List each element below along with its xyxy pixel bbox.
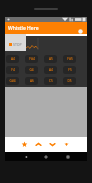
- button[interactable]: STOP: [5, 34, 26, 51]
- button[interactable]: F#5: [63, 55, 76, 63]
- button[interactable]: F#4: [25, 55, 38, 63]
- staticText: G4: [29, 68, 34, 72]
- staticText: F5: [68, 68, 72, 72]
- button[interactable]: A4: [44, 66, 57, 74]
- button[interactable]: Record: [76, 27, 85, 36]
- button[interactable]: Recents: [63, 152, 72, 161]
- button[interactable]: Tune: [60, 138, 73, 151]
- staticText: F#5: [67, 57, 73, 61]
- staticText: Whistle Here: [8, 25, 39, 32]
- staticText: G#4: [9, 79, 16, 83]
- button[interactable]: Pitch down: [46, 138, 59, 151]
- staticText: A4: [11, 57, 15, 61]
- button[interactable]: A6: [25, 77, 38, 85]
- button[interactable]: A4: [6, 55, 19, 63]
- button[interactable]: G4: [25, 66, 38, 74]
- button[interactable]: C5: [44, 77, 57, 85]
- staticText: D5: [67, 79, 72, 83]
- button[interactable]: Favorite: [18, 138, 31, 151]
- button[interactable]: D5: [63, 77, 76, 85]
- staticText: F#4: [29, 57, 35, 61]
- staticText: F4: [11, 68, 15, 72]
- staticText: A6: [30, 79, 34, 83]
- staticText: C5: [49, 79, 53, 83]
- staticText: A5: [49, 57, 53, 61]
- button[interactable]: F5: [63, 66, 76, 74]
- button[interactable]: F4: [6, 66, 19, 74]
- button[interactable]: Pitch up: [32, 138, 45, 151]
- button[interactable]: Home: [41, 152, 50, 161]
- button[interactable]: Back: [21, 152, 30, 161]
- button[interactable]: G#4: [6, 77, 19, 85]
- staticText: STOP: [13, 42, 22, 47]
- button[interactable]: A5: [44, 55, 57, 63]
- staticText: A4: [49, 68, 53, 72]
